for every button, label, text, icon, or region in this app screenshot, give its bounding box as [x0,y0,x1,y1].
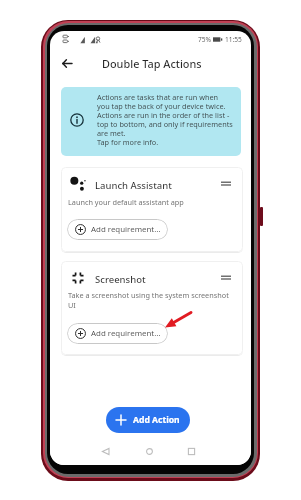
button[interactable]: Add requirement… [67,219,168,240]
staticText: Double Tap Actions [102,56,202,71]
button[interactable]: Actions are tasks that are run when you … [61,87,241,156]
button[interactable]: Reorder [217,269,235,287]
staticText: 75% [198,35,212,44]
staticText: Screenshot [95,273,146,286]
staticText: Take a screenshot using the system scree… [68,290,238,310]
button[interactable]: Add Action [106,407,190,433]
button[interactable]: Launch Assistant [61,167,243,252]
staticText: 11:55 [225,35,242,44]
button[interactable]: Back [54,51,79,76]
button[interactable]: Screenshot [61,261,243,355]
staticText: Add requirement… [91,328,161,339]
staticText: Actions are tasks that are run when you … [97,92,233,147]
staticText: Launch Assistant [95,179,172,192]
staticText: Add Action [133,414,180,426]
staticText: Launch your default assistant app [68,197,184,207]
button[interactable]: Recent apps [182,442,200,460]
button[interactable]: Home [140,442,158,460]
button[interactable]: Reorder [217,175,235,193]
button[interactable]: Back [96,442,114,460]
button[interactable]: Add requirement… [67,323,168,344]
staticText: Add requirement… [91,224,161,235]
